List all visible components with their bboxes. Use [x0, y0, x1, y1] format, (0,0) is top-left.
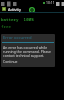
- staticText: free: [1, 24, 12, 30]
- button[interactable]: Continue: [1, 59, 20, 64]
- staticText: 10:11: [46, 0, 55, 5]
- staticText: Activity: [8, 7, 21, 12]
- staticText: An error has occurred while running the …: [3, 45, 53, 58]
- staticText: battery 100%: [1, 17, 34, 23]
- other: App icon: [2, 7, 6, 11]
- staticText: Continue: [3, 59, 18, 64]
- staticText: Error occurred: [3, 35, 32, 41]
- button[interactable]: Running indicator: [28, 6, 35, 13]
